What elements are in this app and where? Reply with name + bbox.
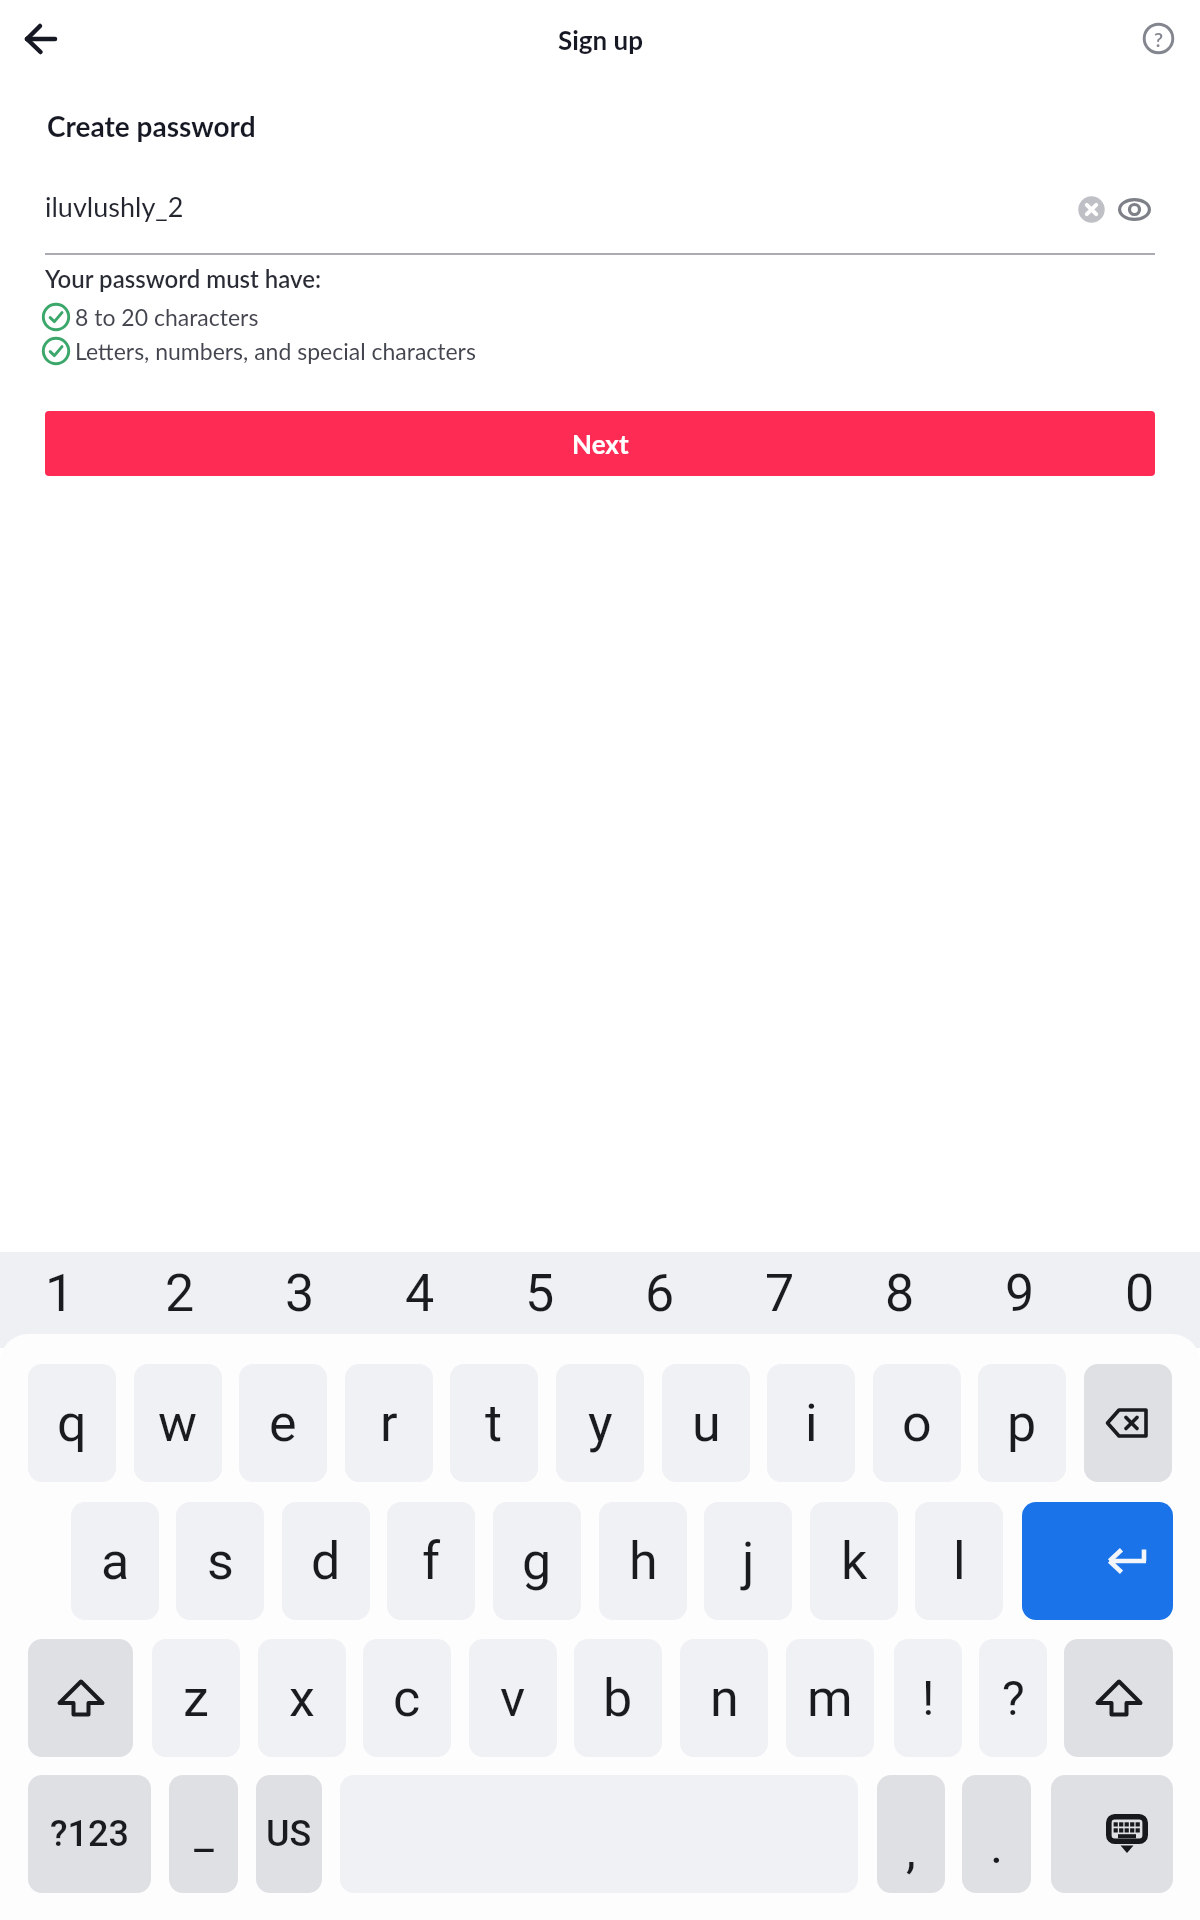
- button[interactable]: 9: [960, 1256, 1080, 1330]
- button[interactable]: 6: [600, 1256, 720, 1330]
- button[interactable]: .: [962, 1775, 1031, 1893]
- button[interactable]: d: [282, 1502, 370, 1620]
- button[interactable]: [1078, 196, 1105, 223]
- staticText: 5: [525, 1263, 555, 1324]
- staticText: v: [500, 1668, 526, 1729]
- button[interactable]: h: [599, 1502, 687, 1620]
- button[interactable]: 3: [240, 1256, 360, 1330]
- button[interactable]: US: [256, 1775, 322, 1893]
- staticText: 9: [1005, 1263, 1035, 1324]
- button[interactable]: b: [574, 1639, 662, 1757]
- staticText: t: [485, 1393, 503, 1454]
- button[interactable]: t: [450, 1364, 538, 1482]
- button[interactable]: 8: [840, 1256, 960, 1330]
- button[interactable]: z: [152, 1639, 240, 1757]
- staticText: j: [742, 1531, 755, 1592]
- button[interactable]: p: [978, 1364, 1066, 1482]
- button[interactable]: 1: [0, 1256, 120, 1330]
- button[interactable]: 2: [120, 1256, 240, 1330]
- button[interactable]: ?123: [28, 1775, 151, 1893]
- staticText: d: [311, 1531, 341, 1592]
- button[interactable]: [18, 16, 64, 62]
- staticText: b: [603, 1668, 633, 1729]
- staticText: ,: [906, 1821, 916, 1880]
- button[interactable]: 7: [720, 1256, 840, 1330]
- staticText: US: [266, 1813, 312, 1855]
- button[interactable]: _: [169, 1775, 238, 1893]
- staticText: 2: [165, 1263, 195, 1324]
- button[interactable]: [1051, 1775, 1173, 1893]
- staticText: s: [207, 1531, 234, 1592]
- staticText: y: [588, 1393, 613, 1454]
- button[interactable]: x: [258, 1639, 346, 1757]
- button[interactable]: 0: [1080, 1256, 1200, 1330]
- staticText: 8: [885, 1263, 915, 1324]
- button[interactable]: s: [176, 1502, 264, 1620]
- button[interactable]: v: [469, 1639, 557, 1757]
- staticText: l: [953, 1531, 966, 1592]
- button[interactable]: n: [680, 1639, 768, 1757]
- staticText: 7: [765, 1263, 795, 1324]
- button[interactable]: [1064, 1639, 1173, 1757]
- button[interactable]: m: [786, 1639, 874, 1757]
- staticText: 1: [45, 1263, 75, 1324]
- button[interactable]: k: [810, 1502, 898, 1620]
- staticText: h: [629, 1531, 658, 1592]
- staticText: z: [183, 1668, 209, 1729]
- button[interactable]: w: [134, 1364, 222, 1482]
- staticText: a: [101, 1531, 130, 1592]
- button[interactable]: c: [363, 1639, 451, 1757]
- staticText: r: [380, 1393, 398, 1454]
- staticText: Next: [572, 428, 629, 459]
- button[interactable]: r: [345, 1364, 433, 1482]
- button[interactable]: 4: [360, 1256, 480, 1330]
- button[interactable]: q: [28, 1364, 116, 1482]
- button[interactable]: [28, 1639, 133, 1757]
- button[interactable]: [1022, 1502, 1173, 1620]
- staticText: p: [1007, 1393, 1037, 1454]
- staticText: 0: [1125, 1263, 1155, 1324]
- staticText: !: [922, 1670, 935, 1726]
- button[interactable]: !: [894, 1639, 962, 1757]
- staticText: ?: [1002, 1670, 1025, 1726]
- button[interactable]: l: [915, 1502, 1003, 1620]
- staticText: o: [902, 1393, 932, 1454]
- button[interactable]: o: [873, 1364, 961, 1482]
- staticText: m: [807, 1668, 853, 1729]
- button[interactable]: u: [662, 1364, 750, 1482]
- staticText: c: [393, 1668, 421, 1729]
- staticText: w: [158, 1393, 198, 1454]
- button[interactable]: f: [387, 1502, 475, 1620]
- button[interactable]: y: [556, 1364, 644, 1482]
- button[interactable]: a: [71, 1502, 159, 1620]
- staticText: n: [710, 1668, 739, 1729]
- button[interactable]: ,: [877, 1775, 945, 1893]
- staticText: 4: [405, 1263, 435, 1324]
- staticText: f: [422, 1531, 441, 1592]
- staticText: Sign up: [558, 24, 643, 55]
- button[interactable]: Next: [45, 411, 1155, 476]
- button[interactable]: iluvlushly_2: [0, 180, 1200, 240]
- button[interactable]: ?: [1141, 21, 1176, 56]
- staticText: Letters, numbers, and special characters: [75, 337, 476, 365]
- staticText: .: [990, 1817, 1004, 1876]
- staticText: q: [57, 1393, 87, 1454]
- staticText: u: [692, 1393, 721, 1454]
- staticText: e: [269, 1393, 297, 1454]
- staticText: 8 to 20 characters: [75, 303, 259, 331]
- button[interactable]: g: [493, 1502, 581, 1620]
- button[interactable]: i: [767, 1364, 855, 1482]
- button[interactable]: e: [239, 1364, 327, 1482]
- staticText: ?123: [50, 1813, 129, 1855]
- button[interactable]: ?: [979, 1639, 1047, 1757]
- button[interactable]: [1084, 1364, 1172, 1482]
- staticText: 3: [285, 1263, 315, 1324]
- button[interactable]: [1118, 198, 1151, 221]
- staticText: 6: [645, 1263, 675, 1324]
- button[interactable]: 5: [480, 1256, 600, 1330]
- staticText: g: [522, 1531, 552, 1592]
- button[interactable]: j: [704, 1502, 792, 1620]
- staticText: iluvlushly_2: [45, 190, 184, 222]
- staticText: i: [805, 1393, 818, 1454]
